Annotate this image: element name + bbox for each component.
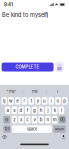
button[interactable]: l bbox=[59, 106, 64, 114]
staticText: m bbox=[53, 117, 57, 122]
button[interactable]: “The” bbox=[1, 86, 23, 97]
button[interactable]: g bbox=[32, 106, 37, 114]
staticText: a bbox=[7, 108, 9, 113]
button[interactable]: v bbox=[32, 116, 37, 123]
button[interactable]: u bbox=[42, 97, 47, 105]
button[interactable]: I bbox=[46, 86, 68, 97]
button[interactable]: y bbox=[35, 97, 41, 105]
button[interactable]: o bbox=[55, 97, 61, 105]
button[interactable]: x bbox=[18, 116, 24, 123]
button[interactable]: Next keyboard bbox=[1, 134, 8, 140]
button[interactable]: c bbox=[25, 116, 30, 123]
button[interactable]: space bbox=[12, 125, 52, 133]
staticText: s bbox=[13, 108, 15, 113]
button[interactable]: j bbox=[45, 106, 51, 114]
button[interactable]: Lock bbox=[55, 62, 64, 72]
staticText: 123 bbox=[4, 127, 9, 131]
staticText: h bbox=[40, 108, 43, 113]
staticText: “The” bbox=[7, 89, 17, 94]
staticText: k bbox=[54, 108, 56, 113]
button[interactable]: a bbox=[5, 106, 10, 114]
button[interactable]: q bbox=[1, 97, 7, 105]
staticText: q bbox=[3, 98, 6, 103]
staticText: The bbox=[31, 89, 37, 94]
staticText: Be kind to myself bbox=[2, 12, 47, 18]
button[interactable]: k bbox=[52, 106, 57, 114]
staticText: return bbox=[55, 127, 64, 131]
button[interactable]: Dictation bbox=[60, 134, 67, 140]
button[interactable]: b bbox=[38, 116, 44, 123]
staticText: COMPLETE bbox=[16, 64, 40, 70]
button[interactable]: 123 bbox=[3, 125, 11, 133]
staticText: l bbox=[61, 108, 62, 113]
staticText: i bbox=[51, 98, 52, 103]
staticText: c bbox=[26, 117, 29, 122]
button[interactable]: return bbox=[53, 125, 66, 133]
staticText: space bbox=[27, 127, 37, 131]
button[interactable]: ⇧ bbox=[3, 116, 10, 123]
button[interactable]: n bbox=[45, 116, 51, 123]
staticText: p bbox=[63, 98, 66, 103]
button[interactable]: h bbox=[38, 106, 44, 114]
button[interactable]: w bbox=[8, 97, 14, 105]
button[interactable]: e bbox=[15, 97, 20, 105]
staticText: d bbox=[20, 108, 23, 113]
staticText: t bbox=[31, 98, 32, 103]
button[interactable]: s bbox=[12, 106, 17, 114]
staticText: j bbox=[47, 108, 48, 113]
button[interactable]: ⌫ bbox=[59, 116, 66, 123]
staticText: w bbox=[9, 98, 13, 103]
staticText: u bbox=[43, 98, 46, 103]
staticText: y bbox=[37, 98, 39, 103]
staticText: o bbox=[56, 98, 59, 103]
staticText: 9:41 bbox=[4, 2, 13, 7]
staticText: b bbox=[40, 117, 43, 122]
button[interactable]: z bbox=[12, 116, 17, 123]
button[interactable]: COMPLETE bbox=[2, 62, 54, 71]
button[interactable]: r bbox=[22, 97, 27, 105]
staticText: g bbox=[33, 108, 36, 113]
button[interactable]: d bbox=[18, 106, 24, 114]
staticText: z bbox=[13, 117, 15, 122]
staticText: I bbox=[57, 89, 58, 94]
staticText: r bbox=[23, 98, 25, 103]
staticText: n bbox=[46, 117, 49, 122]
button[interactable]: The bbox=[23, 86, 46, 97]
button[interactable]: m bbox=[52, 116, 57, 123]
staticText: x bbox=[20, 117, 22, 122]
staticText: v bbox=[33, 117, 35, 122]
staticText: ⌫ bbox=[59, 117, 65, 122]
button[interactable]: f bbox=[25, 106, 30, 114]
staticText: e bbox=[16, 98, 19, 103]
button[interactable]: t bbox=[28, 97, 34, 105]
button[interactable]: i bbox=[48, 97, 54, 105]
button[interactable]: p bbox=[62, 97, 67, 105]
staticText: f bbox=[27, 108, 29, 113]
staticText: ⇧ bbox=[4, 117, 9, 122]
